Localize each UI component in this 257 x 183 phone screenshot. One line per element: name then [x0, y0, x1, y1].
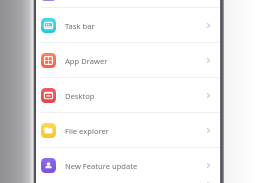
- staticText: New Feature update: [65, 161, 204, 171]
- staticText: File explorer: [65, 126, 204, 136]
- button[interactable]: File explorer: [36, 113, 220, 148]
- other: Open App Drawer: [204, 56, 213, 65]
- button[interactable]: App Drawer: [36, 43, 220, 78]
- other: Open Desktop: [204, 91, 213, 100]
- button[interactable]: New Feature update: [36, 148, 220, 183]
- staticText: Task bar: [65, 21, 204, 31]
- other: Open Task bar: [204, 21, 213, 30]
- staticText: Desktop: [65, 91, 204, 101]
- button[interactable]: Task bar: [36, 8, 220, 43]
- button[interactable]: Desktop: [36, 78, 220, 113]
- other: Open File explorer: [204, 126, 213, 135]
- staticText: App Drawer: [65, 56, 204, 66]
- other: Open New Feature update: [204, 161, 213, 170]
